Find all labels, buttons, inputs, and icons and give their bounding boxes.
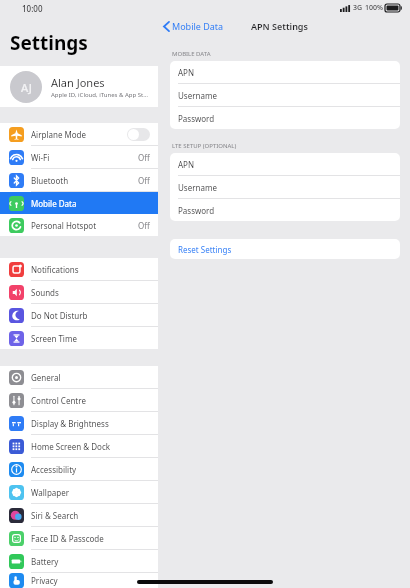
button[interactable]: Mobile Data — [163, 20, 224, 32]
staticText: Bluetooth — [31, 175, 138, 186]
staticText: Wallpaper — [31, 487, 150, 498]
staticText: LTE SETUP (OPTIONAL) — [172, 142, 237, 150]
staticText: APN — [178, 159, 195, 170]
button[interactable]: Airplane Mode toggle — [127, 128, 150, 141]
staticText: Airplane Mode — [31, 129, 127, 140]
staticText: APN — [178, 67, 195, 78]
button[interactable]: Password — [170, 199, 400, 221]
staticText: Personal Hotspot — [31, 220, 138, 231]
staticText: MOBILE DATA — [172, 50, 211, 58]
staticText: Alan Jones — [51, 75, 105, 90]
staticText: 3G — [353, 3, 363, 13]
staticText: Screen Time — [31, 333, 150, 344]
button[interactable]: Do Not Disturb — [0, 304, 158, 326]
staticText: Reset Settings — [178, 244, 232, 255]
staticText: Settings — [10, 30, 88, 56]
button[interactable]: Mobile Data — [0, 192, 158, 214]
button[interactable]: Airplane Mode — [0, 123, 158, 145]
button[interactable]: Display & Brightness — [0, 412, 158, 434]
staticText: APN Settings — [251, 20, 308, 32]
button[interactable]: AJ — [0, 66, 158, 107]
button[interactable]: Wallpaper — [0, 481, 158, 503]
staticText: Apple ID, iCloud, iTunes & App St… — [51, 91, 148, 99]
staticText: Home Screen & Dock — [31, 441, 150, 452]
staticText: Battery — [31, 556, 150, 567]
staticText: Username — [178, 182, 217, 193]
staticText: Face ID & Passcode — [31, 533, 150, 544]
staticText: Off — [138, 175, 150, 186]
button[interactable]: APN — [170, 61, 400, 83]
staticText: Off — [138, 220, 150, 231]
button[interactable]: Home Screen & Dock — [0, 435, 158, 457]
staticText: Mobile Data — [31, 198, 150, 209]
button[interactable]: Username — [170, 176, 400, 198]
button[interactable]: Notifications — [0, 258, 158, 280]
staticText: Accessibility — [31, 464, 150, 475]
button[interactable]: Screen Time — [0, 327, 158, 349]
button[interactable]: APN — [170, 153, 400, 175]
staticText: Notifications — [31, 264, 150, 275]
staticText: Do Not Disturb — [31, 310, 150, 321]
button[interactable]: Bluetooth — [0, 169, 158, 191]
button[interactable]: Username — [170, 84, 400, 106]
button[interactable]: Battery — [0, 550, 158, 572]
button[interactable]: Reset Settings — [170, 239, 400, 259]
staticText: 100% — [365, 3, 383, 13]
staticText: Display & Brightness — [31, 418, 150, 429]
staticText: Siri & Search — [31, 510, 150, 521]
staticText: Off — [138, 152, 150, 163]
button[interactable]: Accessibility — [0, 458, 158, 480]
button[interactable]: Password — [170, 107, 400, 129]
button[interactable]: Face ID & Passcode — [0, 527, 158, 549]
staticText: Wi-Fi — [31, 152, 138, 163]
staticText: Control Centre — [31, 395, 150, 406]
button[interactable]: Sounds — [0, 281, 158, 303]
button[interactable]: Personal Hotspot — [0, 214, 158, 236]
button[interactable]: Control Centre — [0, 389, 158, 411]
button[interactable]: Wi-Fi — [0, 146, 158, 168]
staticText: Sounds — [31, 287, 150, 298]
staticText: Password — [178, 113, 215, 124]
button[interactable]: Siri & Search — [0, 504, 158, 526]
staticText: Privacy — [31, 575, 150, 586]
staticText: Password — [178, 205, 215, 216]
staticText: 10:00 — [22, 3, 43, 14]
staticText: AJ — [21, 80, 32, 95]
button[interactable]: Privacy — [0, 573, 158, 588]
button[interactable]: General — [0, 366, 158, 388]
staticText: Mobile Data — [172, 20, 224, 32]
staticText: General — [31, 372, 150, 383]
staticText: Username — [178, 90, 217, 101]
